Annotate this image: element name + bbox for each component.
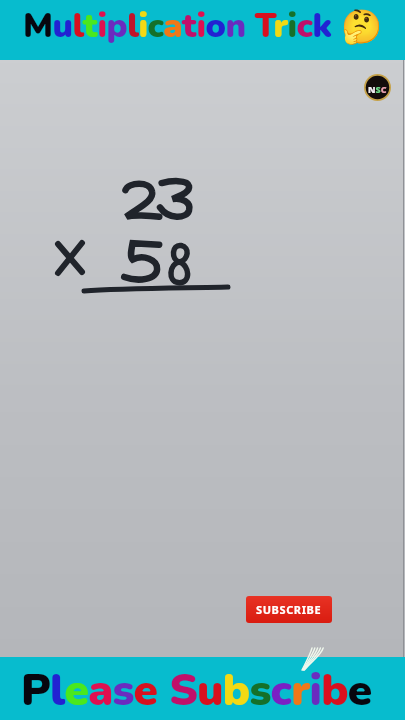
staticText: NSC [368,83,387,95]
button[interactable]: Channel logo [364,74,391,101]
staticText: Please Subscribe [21,661,372,720]
staticText: 🤔 [341,7,383,46]
button[interactable]: SUBSCRIBE [246,596,332,623]
staticText: SUBSCRIBE [256,602,322,617]
staticText: Multiplication Trick [23,3,332,49]
